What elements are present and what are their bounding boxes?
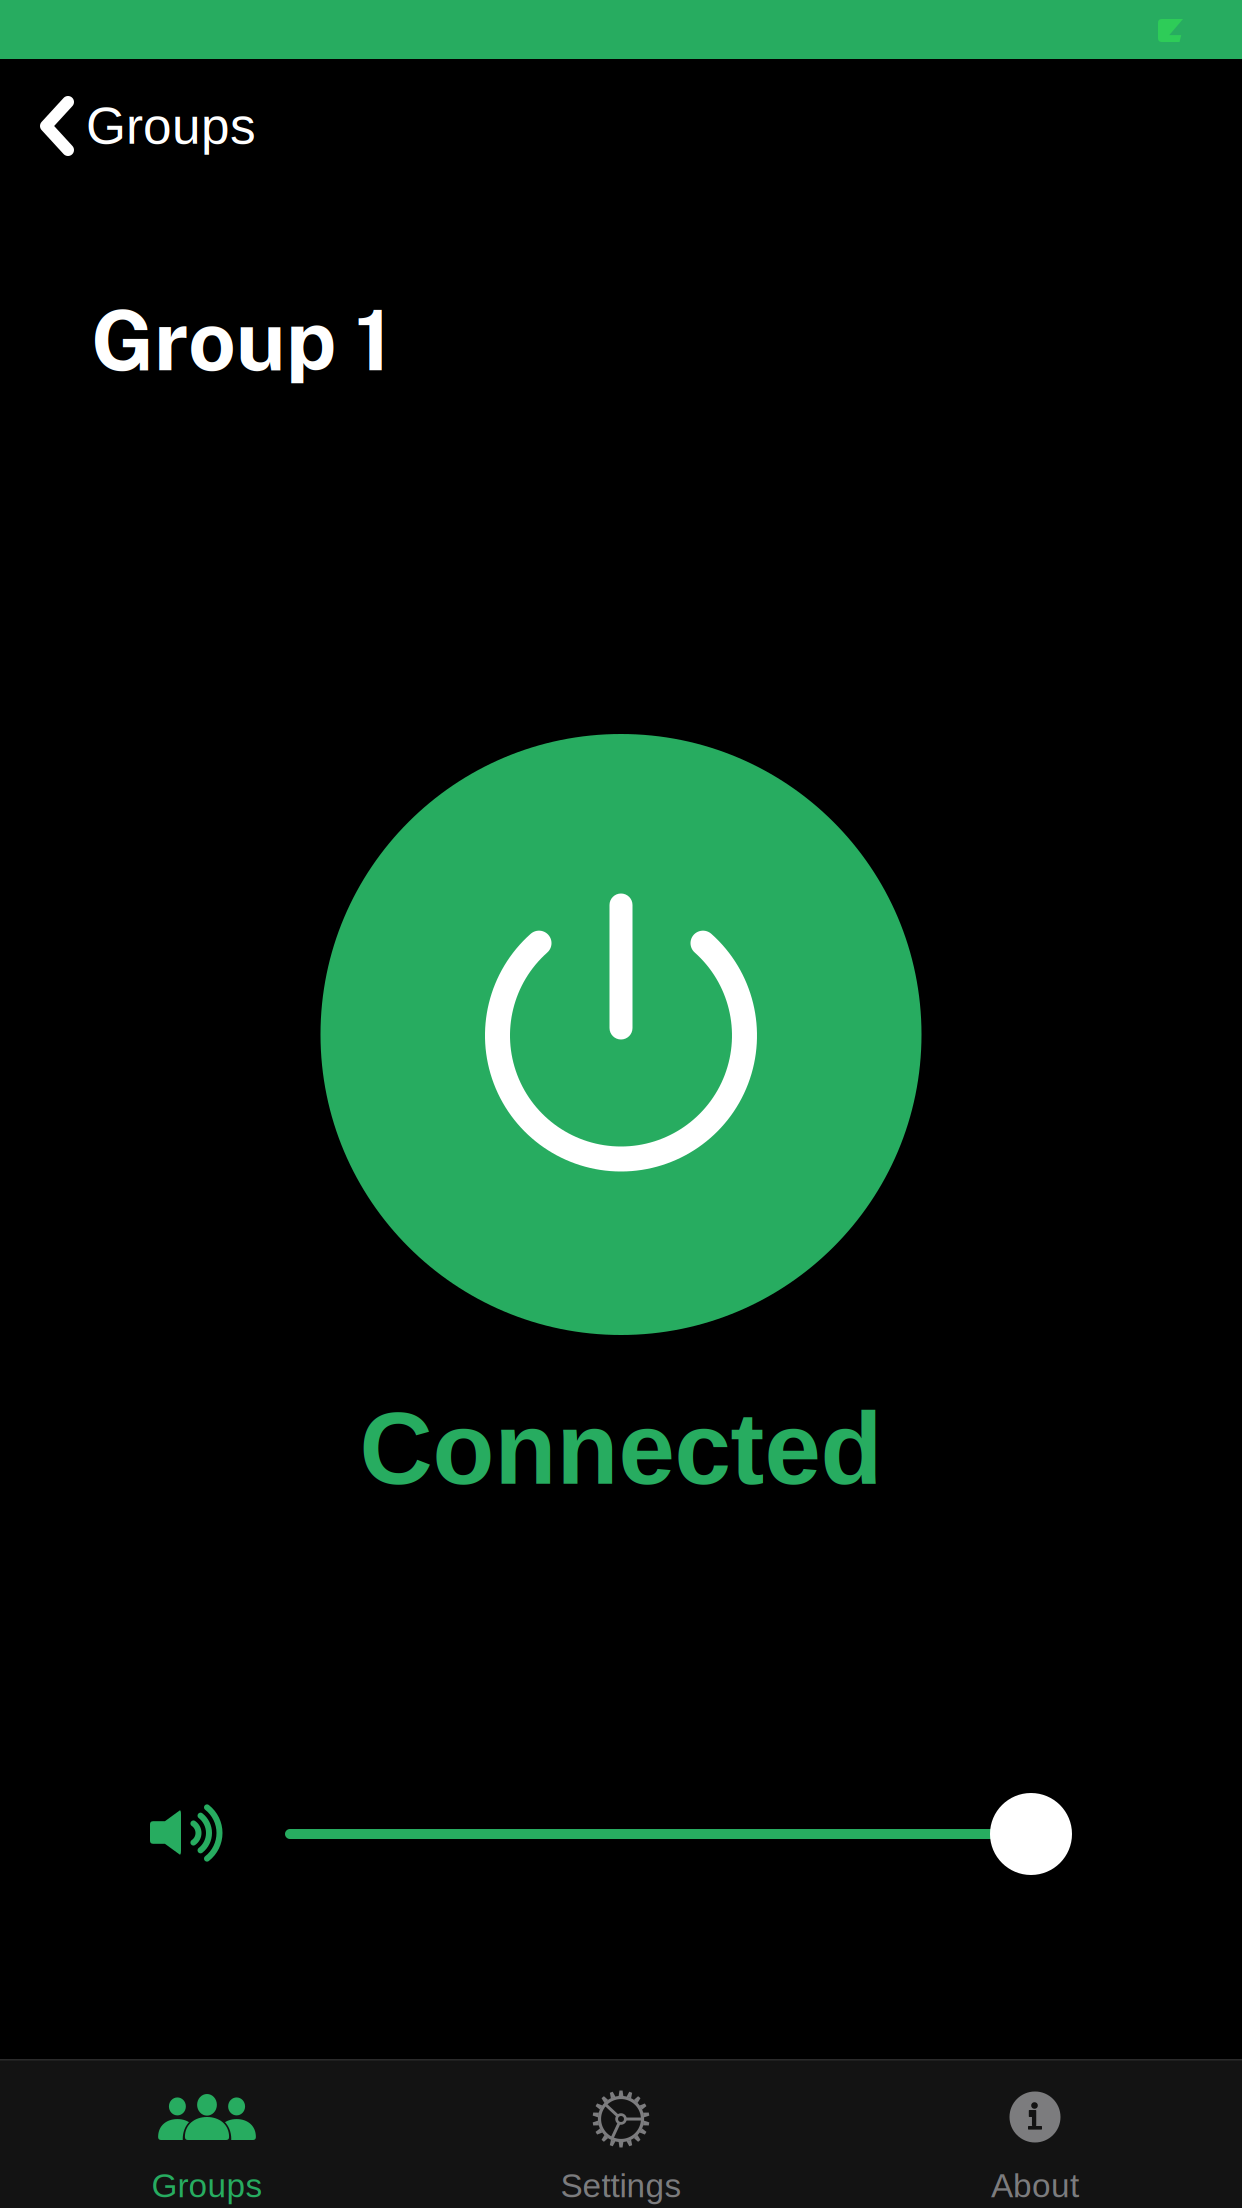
button[interactable]: Groups — [0, 90, 1242, 162]
button[interactable]: Power — [320, 734, 921, 1335]
button[interactable]: Settings — [414, 2060, 828, 2208]
staticText: Connected — [359, 1392, 882, 1505]
staticText: About — [991, 2167, 1079, 2204]
staticText: Groups — [86, 97, 256, 155]
staticText: Groups — [151, 2167, 262, 2204]
button[interactable]: Groups — [0, 2060, 414, 2208]
staticText: Settings — [560, 2167, 681, 2204]
button[interactable]: About — [828, 2060, 1242, 2208]
staticText: Group 1 — [91, 291, 391, 389]
